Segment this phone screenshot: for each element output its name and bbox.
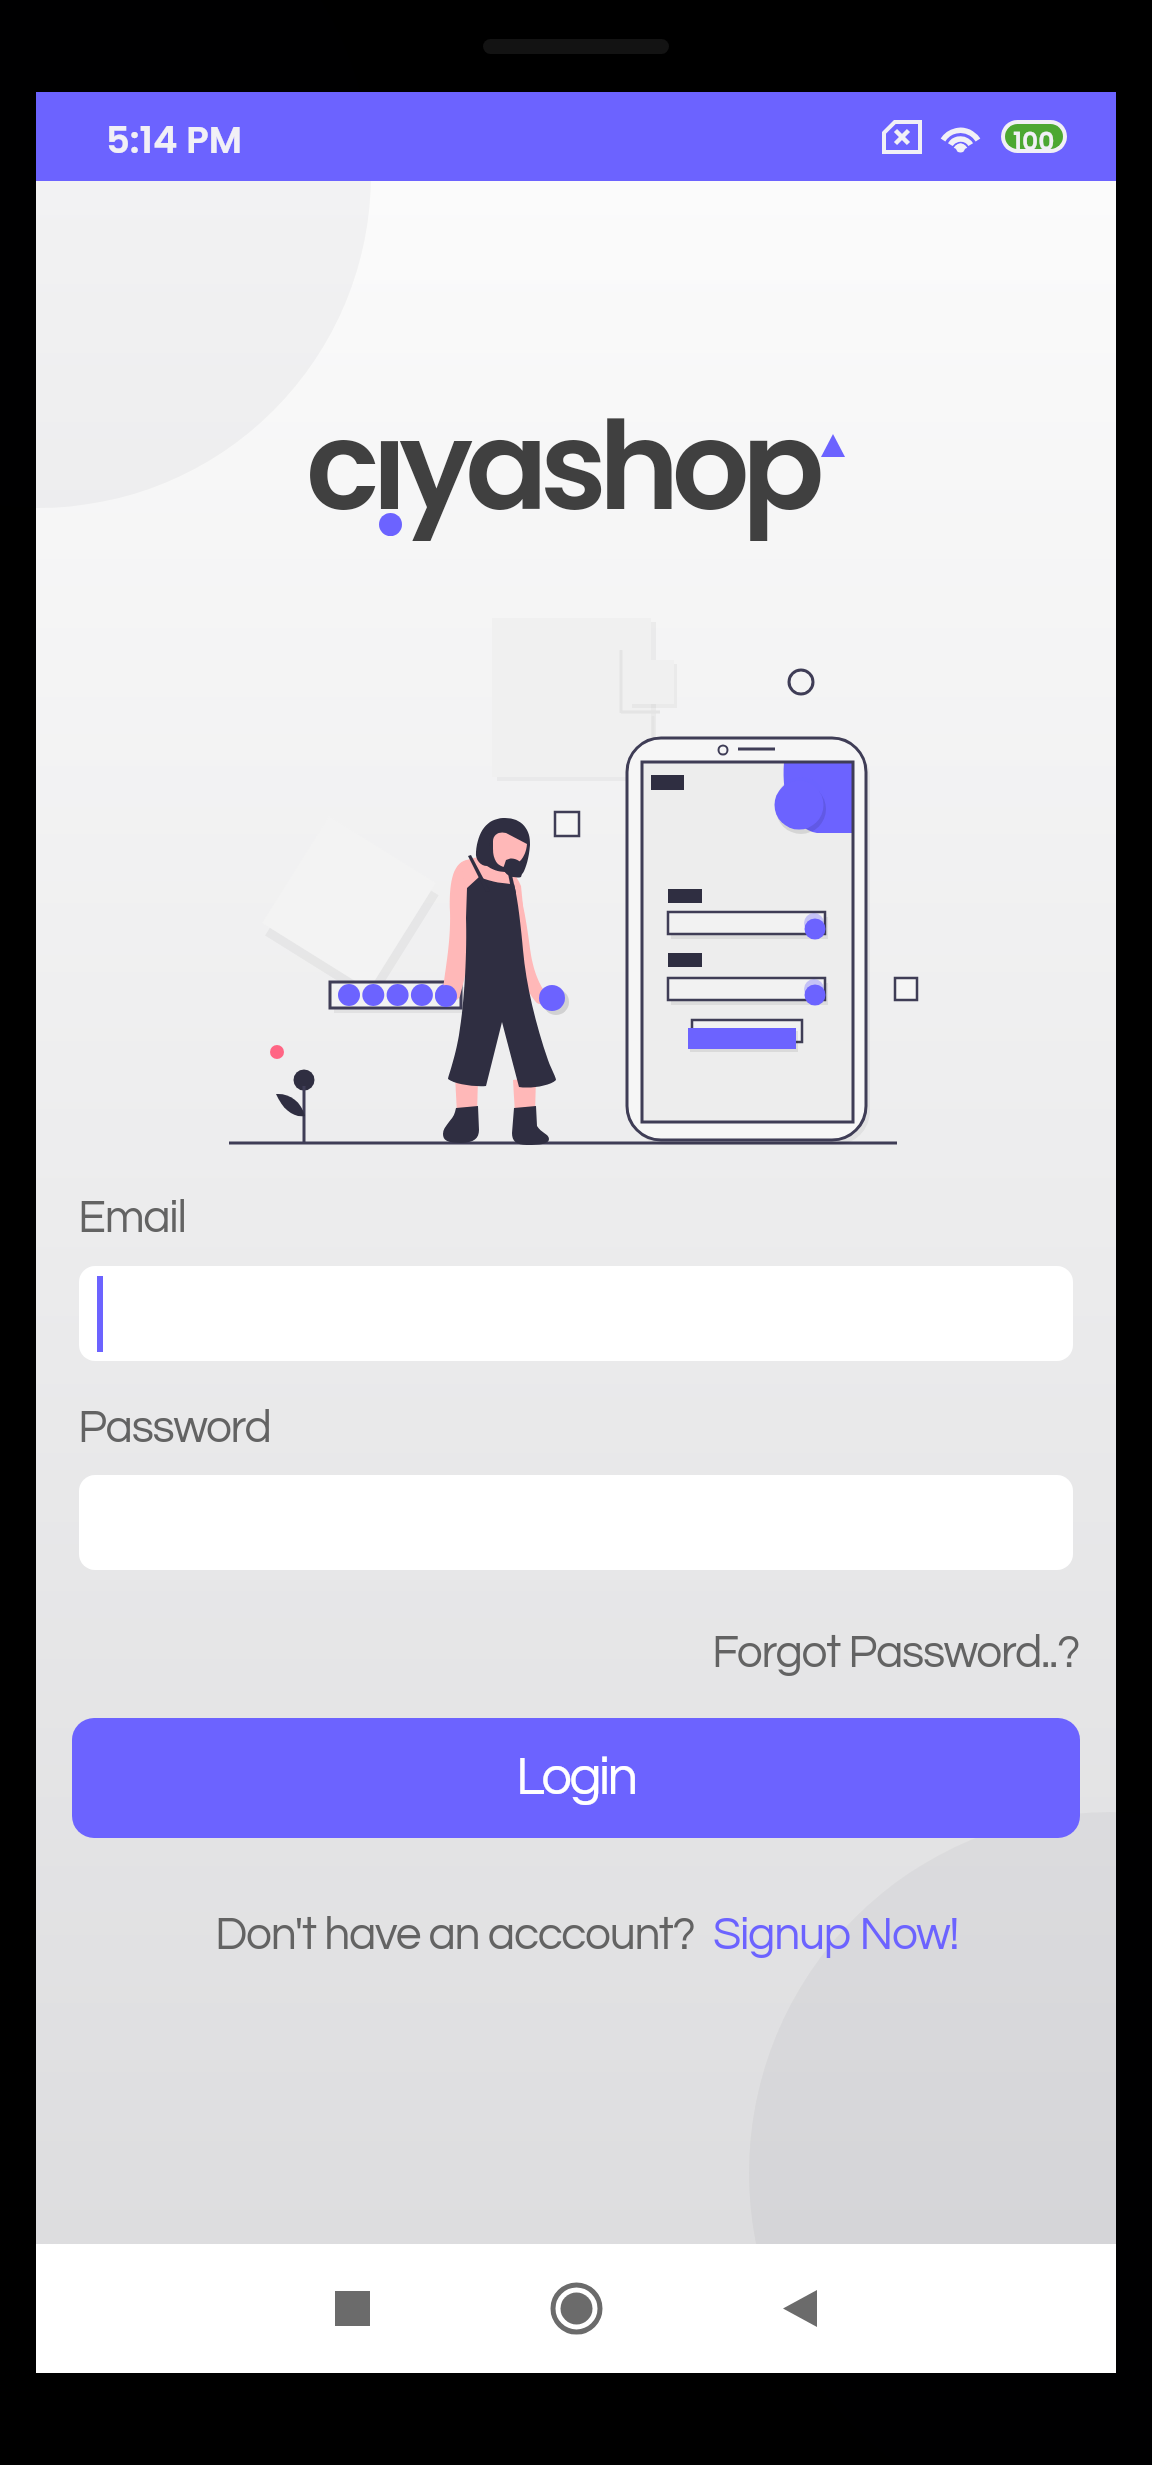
staticText: Email (78, 1194, 186, 1241)
button[interactable]: Forgot Password..? (712, 1629, 1080, 1676)
staticText: Password (78, 1404, 271, 1451)
button[interactable]: Recent apps (292, 2244, 412, 2373)
button[interactable]: Home (516, 2244, 636, 2373)
staticText: cıyashop (306, 381, 817, 552)
button[interactable]: Back (740, 2244, 860, 2373)
staticText: Login (516, 1750, 636, 1806)
staticText: 100 (1013, 124, 1055, 149)
staticText: 5:14 PM (106, 114, 242, 166)
button[interactable] (79, 1266, 1073, 1361)
button[interactable]: Login (72, 1718, 1080, 1838)
staticText: Don't have an acccount? (215, 1911, 695, 1958)
button[interactable]: Signup Now! (713, 1911, 959, 1958)
